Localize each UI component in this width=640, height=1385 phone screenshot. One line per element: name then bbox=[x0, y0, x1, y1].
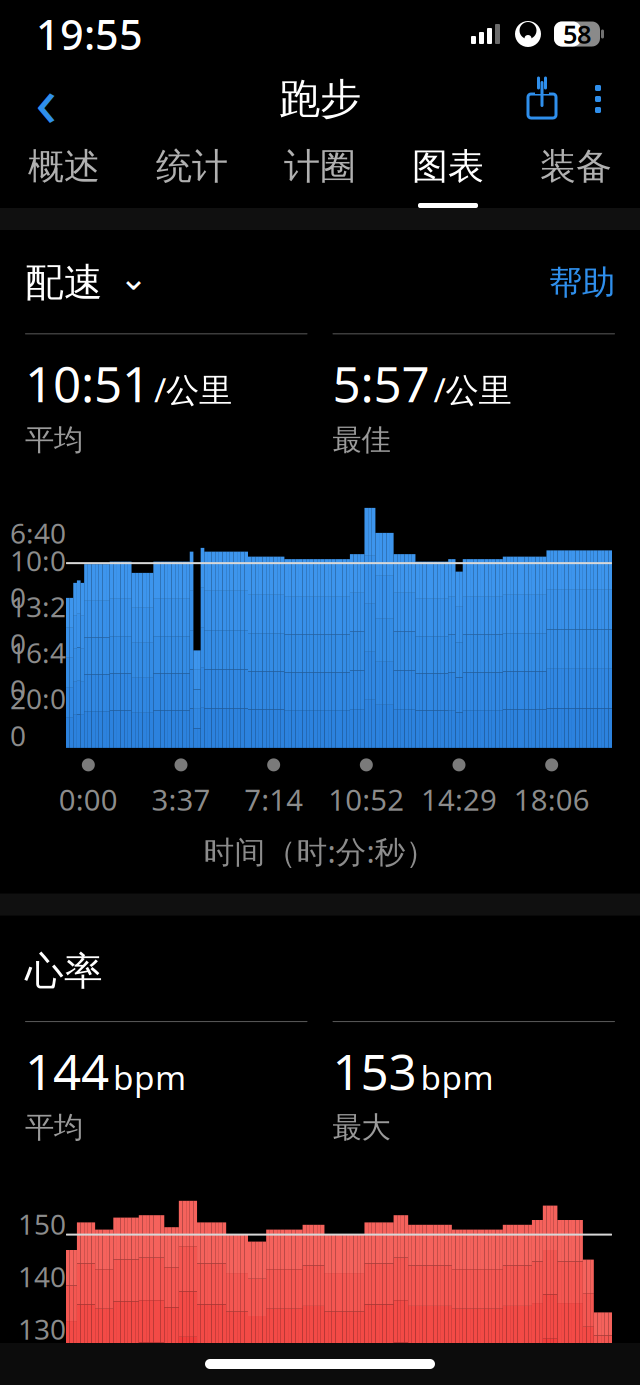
staticText: 帮助 bbox=[549, 262, 615, 303]
staticText: 58 bbox=[563, 17, 591, 51]
staticText: 19:55 bbox=[36, 7, 143, 61]
button[interactable]: 装备 bbox=[512, 130, 640, 208]
button[interactable]: 概述 bbox=[0, 130, 128, 208]
staticText: 心率 bbox=[25, 948, 103, 995]
staticText: /公里 bbox=[433, 367, 511, 411]
staticText: 18:06 bbox=[514, 780, 590, 819]
staticText: 时间（时:分:秒） bbox=[203, 831, 436, 871]
button[interactable]: 图表 bbox=[384, 130, 512, 208]
staticText: 10:51 bbox=[25, 350, 150, 416]
staticText: 装备 bbox=[540, 144, 612, 189]
staticText: 计圈 bbox=[284, 144, 356, 189]
staticText: 140 bbox=[18, 1258, 66, 1295]
staticText: 10:52 bbox=[328, 780, 404, 819]
staticText: 3:37 bbox=[151, 780, 210, 819]
staticText: 统计 bbox=[156, 144, 228, 189]
staticText: 图表 bbox=[412, 144, 484, 189]
staticText: 6:40 bbox=[10, 514, 66, 551]
staticText: ⌄ bbox=[119, 258, 148, 297]
staticText: 0:00 bbox=[59, 780, 118, 819]
staticText: 平均 bbox=[25, 422, 83, 458]
button[interactable]: 计圈 bbox=[256, 130, 384, 208]
staticText: 5:57 bbox=[332, 350, 429, 416]
staticText: 130 bbox=[18, 1310, 66, 1347]
staticText: 跑步 bbox=[279, 74, 361, 124]
staticText: bpm bbox=[420, 1055, 493, 1099]
staticText: 13:20 bbox=[10, 588, 66, 662]
staticText: 最佳 bbox=[332, 422, 390, 458]
button[interactable]: More options bbox=[570, 70, 626, 128]
staticText: 16:40 bbox=[10, 634, 66, 708]
button[interactable]: 统计 bbox=[128, 130, 256, 208]
staticText: bpm bbox=[113, 1055, 186, 1099]
staticText: 153 bbox=[332, 1038, 416, 1104]
staticText: 14:29 bbox=[421, 780, 497, 819]
staticText: /公里 bbox=[154, 367, 232, 411]
staticText: 144 bbox=[25, 1038, 109, 1104]
staticText: 7:14 bbox=[244, 780, 303, 819]
staticText: 平均 bbox=[25, 1110, 83, 1146]
staticText: 150 bbox=[18, 1205, 66, 1242]
button[interactable]: Share bbox=[514, 70, 570, 128]
staticText: ‹ bbox=[35, 51, 57, 147]
button[interactable]: 帮助 bbox=[549, 262, 615, 303]
button[interactable]: Back bbox=[14, 68, 78, 130]
staticText: 20:00 bbox=[10, 680, 66, 754]
staticText: 最大 bbox=[332, 1110, 390, 1146]
button[interactable]: 配速 bbox=[25, 258, 148, 307]
staticText: 10:00 bbox=[10, 542, 66, 616]
staticText: 配速 bbox=[25, 259, 103, 306]
staticText: 概述 bbox=[28, 144, 100, 189]
